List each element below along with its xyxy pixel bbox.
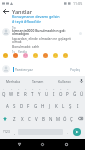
staticText: 8 — [53, 88, 55, 91]
button[interactable]: C — [26, 112, 33, 125]
button[interactable]: Back — [15, 140, 24, 149]
button[interactable]: Emoji reaction — [53, 53, 58, 58]
button[interactable]: L — [60, 99, 67, 112]
button[interactable]: Ö — [61, 112, 68, 125]
staticText: R — [24, 91, 27, 97]
button[interactable]: Z — [10, 112, 18, 125]
button[interactable]: D — [18, 99, 25, 112]
button[interactable]: Voice input — [77, 76, 85, 85]
staticText: Konuşmanın devamı gelsin — [12, 14, 60, 19]
staticText: 0 — [67, 88, 69, 91]
staticText: V — [35, 116, 38, 122]
staticText: kimsenin0000 Bunulmadı'nın gıdı olmadığı… — [12, 28, 78, 36]
button[interactable]: Shift — [0, 112, 10, 125]
button[interactable]: X — [18, 112, 26, 125]
staticText: 11:05 — [73, 1, 83, 6]
staticText: F — [27, 103, 30, 109]
button[interactable]: 2 — [8, 85, 15, 99]
staticText: Tw — [12, 26, 16, 30]
button[interactable]: Ğ — [71, 85, 78, 99]
staticText: D — [20, 103, 24, 109]
staticText: Ğ — [73, 91, 77, 97]
button[interactable]: M — [54, 112, 61, 125]
staticText: A — [6, 103, 9, 109]
button[interactable]: A — [4, 99, 11, 112]
button[interactable]: 4 — [22, 85, 29, 99]
staticText: Ö — [63, 116, 67, 122]
button[interactable]: G — [32, 99, 39, 112]
staticText: Yanıtla — [18, 50, 27, 54]
button[interactable]: Send — [73, 128, 81, 136]
button[interactable]: I — [74, 99, 81, 112]
staticText: Kullanıcı — [58, 79, 71, 83]
staticText: X — [21, 116, 24, 122]
button[interactable]: Home — [38, 140, 47, 149]
button[interactable]: ?123 — [0, 125, 12, 139]
button[interactable]: 6 — [36, 85, 43, 99]
button[interactable]: Merhaba — [0, 76, 25, 85]
button[interactable]: Recents — [62, 140, 71, 149]
staticText: Ü — [80, 91, 84, 97]
staticText: O — [59, 91, 63, 97]
staticText: B — [42, 116, 45, 122]
button[interactable]: Ü — [78, 85, 85, 99]
staticText: M — [56, 116, 60, 122]
button[interactable]: Emoji reaction — [63, 53, 68, 58]
staticText: Q — [2, 91, 6, 97]
button[interactable]: B — [40, 112, 47, 125]
staticText: C — [28, 116, 31, 122]
staticText: N — [49, 116, 53, 122]
button[interactable]: Tamam — [25, 76, 51, 85]
button[interactable]: K — [53, 99, 60, 112]
staticText: Z — [13, 116, 16, 122]
staticText: G — [34, 103, 38, 109]
staticText: 7 — [46, 88, 48, 91]
button[interactable]: S — [11, 99, 18, 112]
button[interactable]: 0 — [64, 85, 71, 99]
button[interactable]: Backspace — [75, 112, 85, 125]
button[interactable]: 8 — [50, 85, 57, 99]
staticText: U — [45, 91, 49, 97]
button[interactable]: Ş — [67, 99, 74, 112]
button[interactable]: 9 — [57, 85, 64, 99]
button[interactable]: Emoji reaction — [13, 53, 18, 58]
staticText: I — [53, 91, 55, 97]
staticText: 9 — [60, 88, 62, 91]
button[interactable]: Back — [0, 7, 12, 15]
button[interactable]: 3 — [15, 85, 22, 99]
staticText: kapardan, elinde olmadan ne gışlageti ol… — [12, 36, 78, 44]
button[interactable]: Kullanıcı — [51, 76, 77, 85]
staticText: , — [14, 130, 16, 135]
staticText: Ç — [70, 116, 73, 122]
button[interactable]: More options — [78, 28, 83, 38]
staticText: 1 — [3, 88, 5, 91]
staticText: L — [62, 103, 65, 109]
button[interactable]: Ç — [68, 112, 75, 125]
button[interactable]: Emoji reaction — [23, 53, 28, 58]
button[interactable]: V — [33, 112, 40, 125]
button[interactable]: 1 — [0, 85, 8, 99]
button[interactable]: Emoji reaction — [43, 53, 48, 58]
staticText: J — [49, 103, 51, 109]
staticText: Tamam — [32, 79, 44, 83]
staticText: I — [77, 103, 79, 109]
staticText: # teyit #flood'dır — [12, 19, 42, 24]
button[interactable]: N — [47, 112, 54, 125]
button[interactable]: J — [46, 99, 53, 112]
staticText: Ş — [69, 103, 72, 109]
button[interactable]: H — [39, 99, 46, 112]
staticText: 3 — [18, 88, 20, 91]
button[interactable]: 5 — [29, 85, 36, 99]
button[interactable]: Emoji reaction — [3, 53, 8, 58]
button[interactable]: 7 — [43, 85, 50, 99]
staticText: Bonulmadıt: cahh — [12, 44, 40, 48]
button[interactable]: Paylaş — [69, 65, 82, 74]
staticText: T — [31, 91, 34, 97]
button[interactable]: F — [25, 99, 32, 112]
staticText: . — [67, 130, 69, 135]
button[interactable]: Emoji reaction — [33, 53, 38, 58]
staticText: K — [55, 103, 58, 109]
button[interactable]: Comma — [12, 125, 18, 139]
